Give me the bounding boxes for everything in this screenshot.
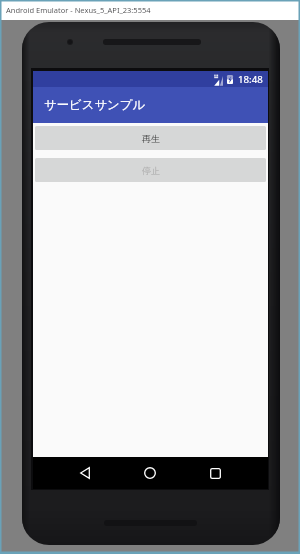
staticText: 再生 xyxy=(142,133,160,144)
button[interactable]: Recent apps xyxy=(198,457,232,489)
button[interactable]: Home xyxy=(133,457,167,489)
button[interactable]: サービスサンプル xyxy=(33,87,268,123)
button[interactable]: Back xyxy=(68,457,102,489)
staticText: 18:48 xyxy=(238,73,263,86)
staticText: サービスサンプル xyxy=(44,97,146,113)
button[interactable]: 再生 xyxy=(35,126,266,150)
staticText: Android Emulator - Nexus_5_API_23:5554 xyxy=(6,5,151,15)
staticText: 停止 xyxy=(142,165,160,176)
